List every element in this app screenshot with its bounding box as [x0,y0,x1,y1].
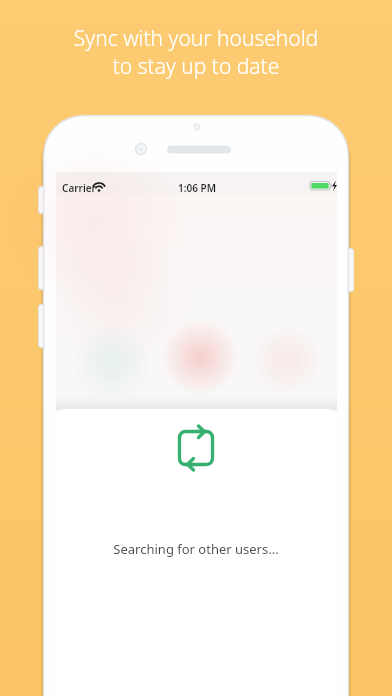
button[interactable]: Searching for other users... [0,540,392,558]
staticText: Searching for other users... [0,540,392,558]
staticText: 1:06 PM [178,181,216,195]
staticText: Sync with your household to stay up to d… [16,24,376,80]
staticText: Carrier [62,181,96,195]
button[interactable]: Sync with household [172,424,220,472]
